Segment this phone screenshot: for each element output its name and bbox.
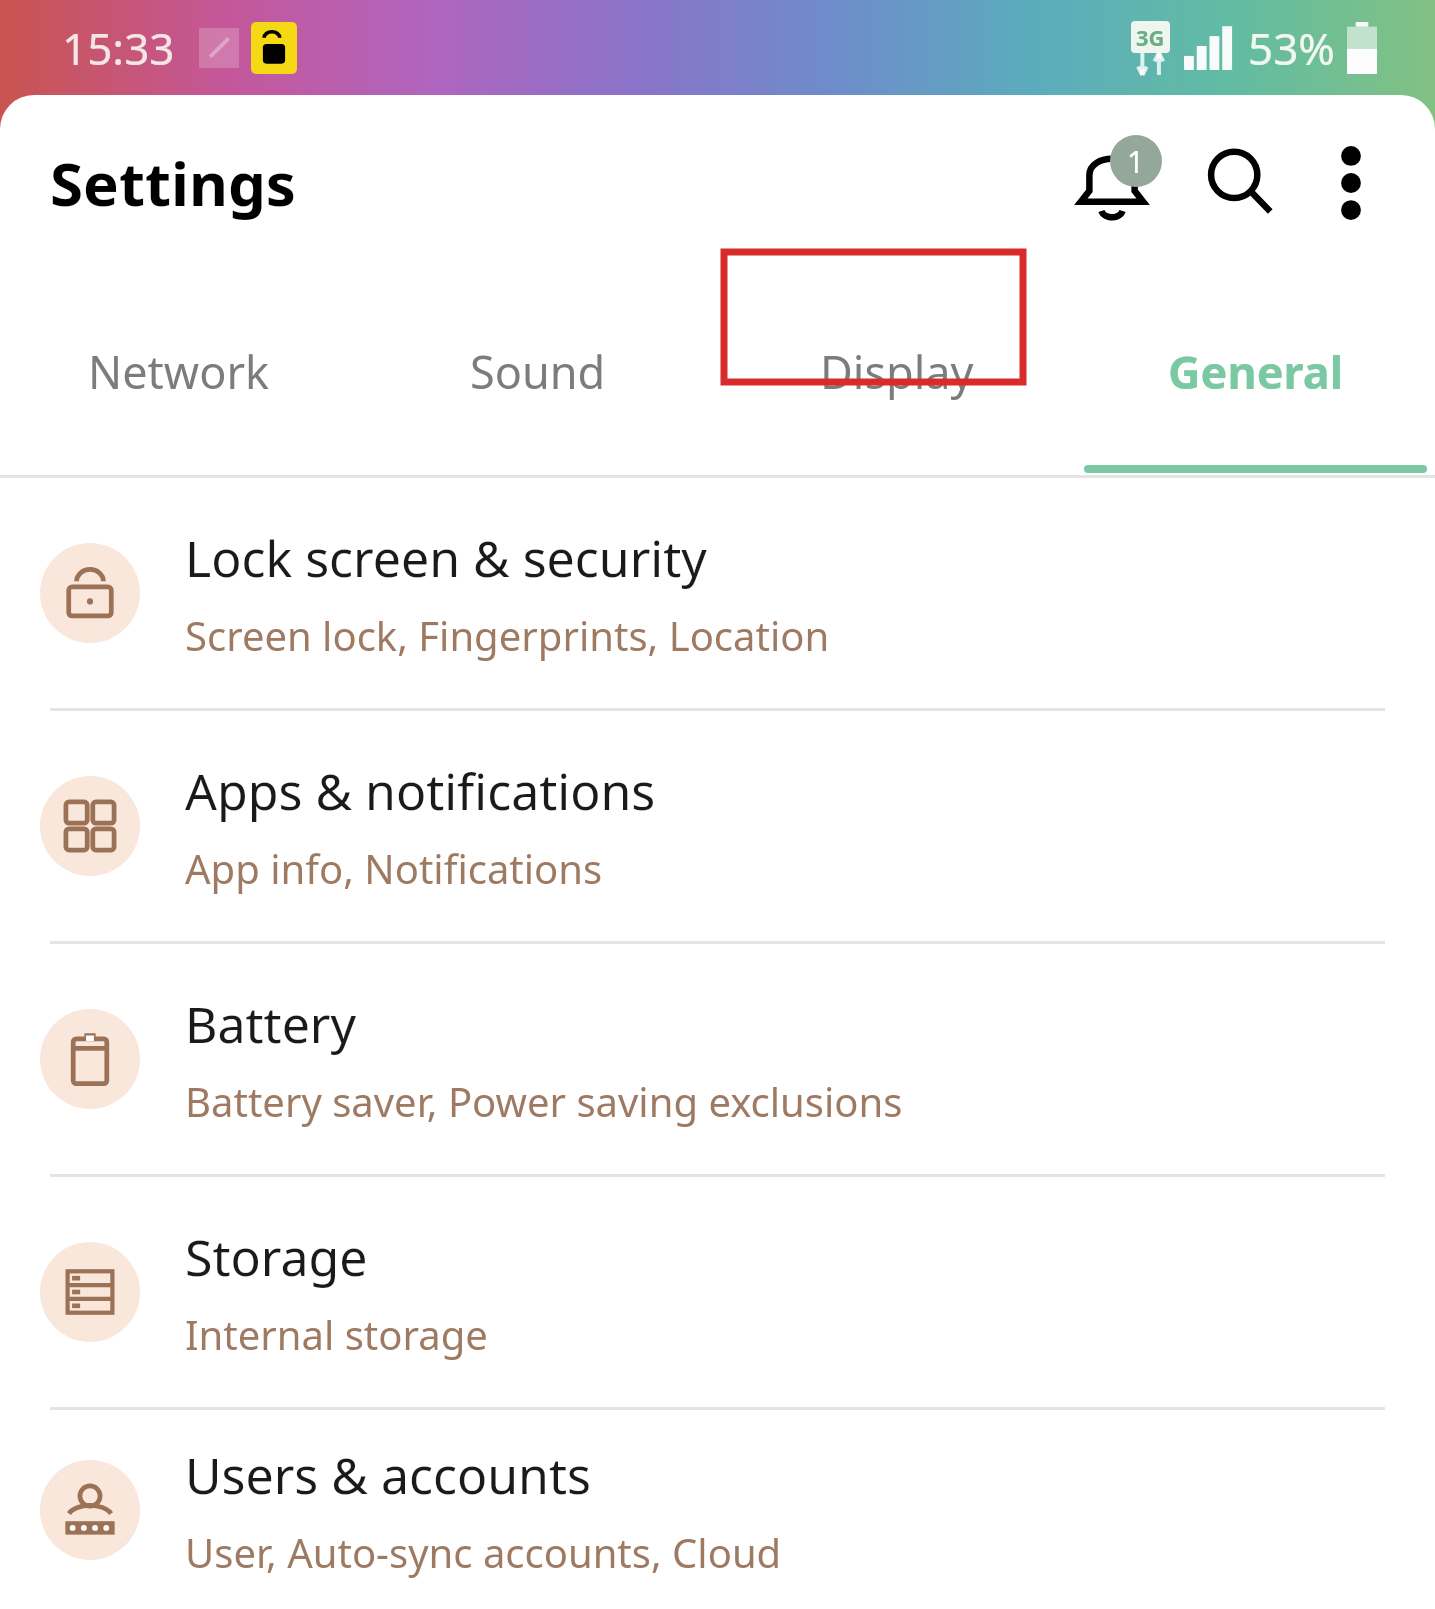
staticText: Internal storage <box>185 1307 488 1361</box>
staticText: 3G <box>1136 22 1165 52</box>
staticText: Settings <box>50 142 296 224</box>
staticText: Display <box>820 341 974 402</box>
staticText: 53% <box>1248 18 1335 78</box>
button[interactable]: Storage <box>0 1177 1435 1407</box>
button[interactable]: Notifications <box>1057 128 1167 238</box>
staticText: Users & accounts <box>185 1441 591 1509</box>
button[interactable]: Lock screen & security <box>0 478 1435 708</box>
button[interactable]: Network <box>0 270 358 473</box>
staticText: 15:33 <box>62 18 175 78</box>
staticText: 1 <box>1127 141 1145 182</box>
staticText: Lock screen & security <box>185 524 707 592</box>
staticText: Battery <box>185 990 356 1058</box>
button[interactable]: Apps & notifications <box>0 711 1435 941</box>
button[interactable]: Users & accounts <box>0 1410 1435 1609</box>
staticText: General <box>1168 341 1344 402</box>
staticText: Network <box>88 341 270 402</box>
button[interactable]: Search <box>1189 131 1293 235</box>
button[interactable]: More options <box>1303 135 1399 231</box>
button[interactable]: General <box>1076 270 1435 473</box>
staticText: Sound <box>470 341 606 402</box>
staticText: Screen lock, Fingerprints, Location <box>185 608 830 662</box>
button[interactable]: Display <box>717 270 1076 473</box>
staticText: Battery saver, Power saving exclusions <box>185 1074 903 1128</box>
button[interactable]: Sound <box>358 270 717 473</box>
button[interactable]: Battery <box>0 944 1435 1174</box>
staticText: User, Auto-sync accounts, Cloud <box>185 1525 782 1579</box>
staticText: Apps & notifications <box>185 757 656 825</box>
staticText: Storage <box>185 1223 368 1291</box>
staticText: App info, Notifications <box>185 841 603 895</box>
